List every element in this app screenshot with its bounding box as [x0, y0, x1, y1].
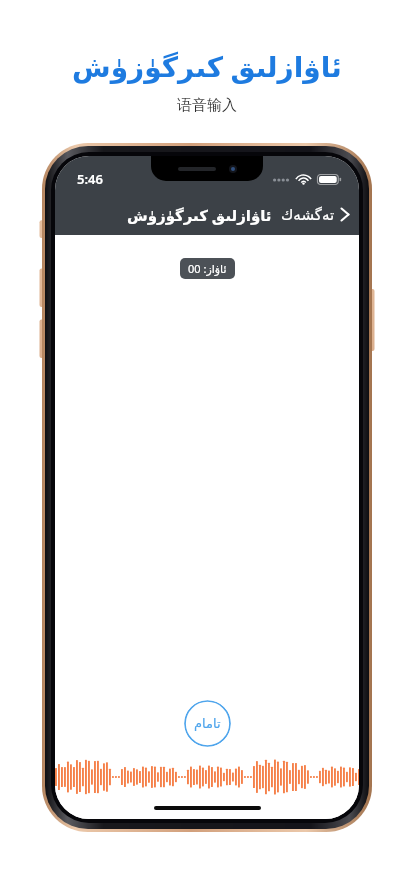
staticText: 语音输入 — [177, 96, 237, 115]
staticText: ئاۋاز: 00 — [188, 261, 227, 276]
staticText: تەگشەك — [281, 206, 335, 223]
staticText: ئاۋازلىق كىرگۈزۈش — [72, 47, 342, 85]
staticText: تامام — [194, 716, 221, 731]
other: Back — [340, 206, 350, 223]
staticText: 5:46 — [77, 170, 103, 188]
button[interactable]: تەگشەك — [272, 199, 359, 230]
staticText: ئاۋازلىق كىرگۈزۈش — [127, 205, 272, 225]
button[interactable]: تامام — [184, 700, 231, 747]
